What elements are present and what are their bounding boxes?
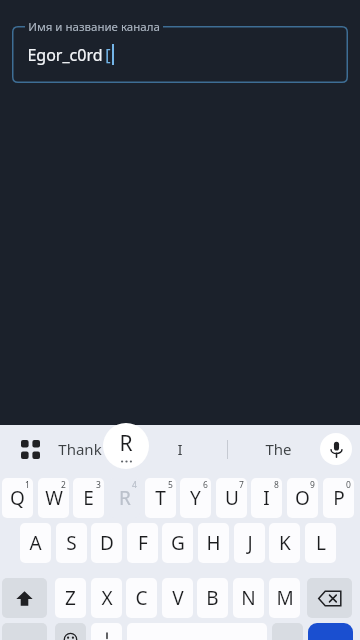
staticText: I bbox=[263, 485, 270, 511]
staticText: 9 bbox=[310, 479, 315, 491]
button[interactable]: G bbox=[162, 523, 193, 563]
staticText: 2 bbox=[61, 479, 66, 491]
button[interactable]: S bbox=[56, 523, 87, 563]
staticText: B bbox=[206, 585, 219, 611]
button[interactable]: E bbox=[73, 478, 104, 518]
staticText: T bbox=[155, 485, 166, 511]
staticText: Thank bbox=[58, 439, 102, 459]
button[interactable]: H bbox=[198, 523, 229, 563]
staticText: P bbox=[333, 485, 345, 511]
staticText: 3 bbox=[96, 479, 101, 491]
staticText: K bbox=[279, 530, 291, 556]
staticText: W bbox=[45, 485, 63, 511]
staticText: M bbox=[276, 585, 294, 611]
staticText: C bbox=[135, 585, 148, 611]
button[interactable]: D bbox=[91, 523, 122, 563]
button[interactable]: Egor_c0rd bbox=[12, 26, 348, 83]
button[interactable]: N bbox=[233, 578, 264, 618]
staticText: Egor_c0rd bbox=[25, 44, 105, 66]
staticText: Y bbox=[190, 485, 201, 511]
button[interactable]: P bbox=[323, 478, 354, 518]
button[interactable]: The bbox=[250, 425, 306, 473]
staticText: 5 bbox=[168, 479, 173, 491]
staticText: 7 bbox=[239, 479, 244, 491]
button[interactable]: Q bbox=[2, 478, 33, 518]
staticText: V bbox=[172, 585, 184, 611]
button[interactable]: Z bbox=[55, 578, 86, 618]
staticText: L bbox=[316, 530, 326, 556]
button[interactable]: Enter bbox=[308, 623, 353, 640]
staticText: I bbox=[177, 439, 183, 459]
button[interactable]: A bbox=[20, 523, 51, 563]
button[interactable]: B bbox=[197, 578, 228, 618]
staticText: J bbox=[247, 530, 253, 556]
button[interactable]: T bbox=[145, 478, 176, 518]
button[interactable]: U bbox=[216, 478, 247, 518]
button[interactable]: Y bbox=[180, 478, 211, 518]
button[interactable]: J bbox=[234, 523, 265, 563]
staticText: Q bbox=[10, 485, 25, 511]
button[interactable]: X bbox=[91, 578, 122, 618]
staticText: O bbox=[295, 485, 310, 511]
staticText: D bbox=[100, 530, 114, 556]
staticText: 0 bbox=[346, 479, 351, 491]
staticText: S bbox=[66, 530, 77, 556]
staticText: G bbox=[171, 530, 185, 556]
staticText: Имя и название канала bbox=[28, 19, 160, 35]
button[interactable]: Open toolbar bbox=[8, 425, 52, 473]
button[interactable]: R bbox=[109, 478, 140, 518]
staticText: H bbox=[206, 530, 221, 556]
staticText: N bbox=[241, 585, 256, 611]
button[interactable]: Shift bbox=[2, 578, 47, 618]
staticText: [ bbox=[105, 44, 111, 66]
other: Key preview R bbox=[103, 423, 149, 469]
staticText: 4 bbox=[132, 479, 137, 491]
staticText: U bbox=[225, 485, 239, 511]
staticText: 6 bbox=[203, 479, 208, 491]
staticText: E bbox=[83, 485, 94, 511]
staticText: F bbox=[138, 530, 148, 556]
button[interactable]: O bbox=[287, 478, 318, 518]
staticText: The bbox=[265, 439, 292, 459]
staticText: R bbox=[119, 429, 133, 458]
button[interactable]: I bbox=[251, 478, 282, 518]
staticText: X bbox=[101, 585, 113, 611]
staticText: 8 bbox=[274, 479, 279, 491]
button[interactable]: Backspace bbox=[307, 578, 352, 618]
button[interactable]: C bbox=[126, 578, 157, 618]
button[interactable]: Thank bbox=[58, 425, 130, 473]
button[interactable]: V bbox=[162, 578, 193, 618]
staticText: 1 bbox=[25, 479, 30, 491]
button[interactable]: I bbox=[158, 425, 202, 473]
button[interactable]: Emoji bbox=[55, 623, 86, 640]
button[interactable]: M bbox=[269, 578, 300, 618]
staticText: R bbox=[119, 485, 131, 511]
button[interactable]: Comma bbox=[91, 623, 122, 640]
button[interactable]: F bbox=[127, 523, 158, 563]
button[interactable]: K bbox=[269, 523, 300, 563]
staticText: Z bbox=[65, 585, 76, 611]
button[interactable]: L bbox=[305, 523, 336, 563]
staticText: A bbox=[29, 530, 42, 556]
button[interactable]: W bbox=[38, 478, 69, 518]
button[interactable]: Voice input bbox=[320, 433, 352, 465]
